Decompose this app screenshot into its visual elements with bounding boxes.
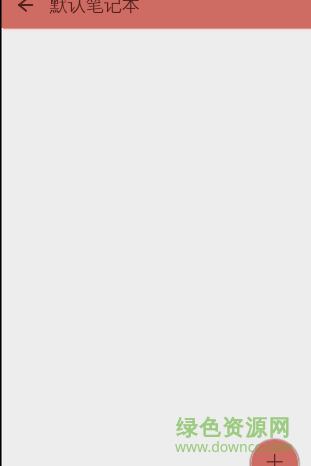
button[interactable]: Back — [14, 0, 38, 22]
staticText: 默认笔记本 — [50, 0, 140, 17]
staticText: www.downcc.com — [175, 437, 294, 456]
staticText: 绿色资源网 — [176, 414, 292, 441]
button[interactable]: Add note — [248, 436, 302, 466]
